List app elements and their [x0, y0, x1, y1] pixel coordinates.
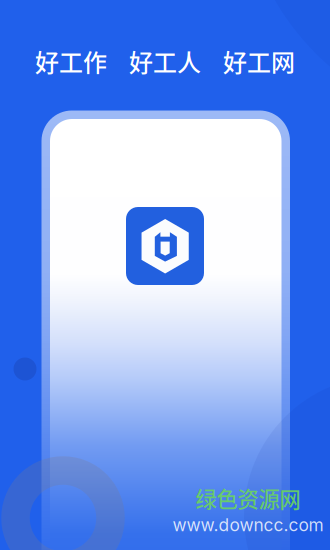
staticText: 好工人 — [129, 44, 201, 78]
staticText: www.downcc.com — [172, 514, 323, 535]
staticText: 好工作 — [35, 44, 107, 78]
staticText: 好工网 — [223, 44, 295, 78]
staticText: 绿色资源网 — [195, 483, 300, 513]
